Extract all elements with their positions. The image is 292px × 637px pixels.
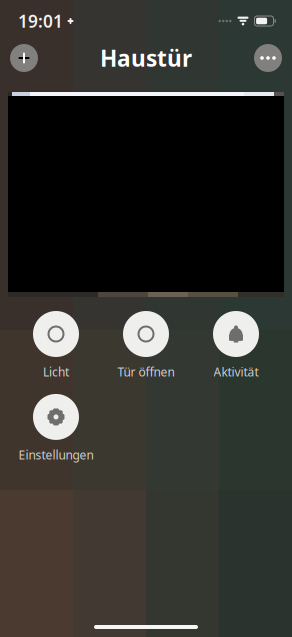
button[interactable]: Aktivität	[191, 311, 281, 380]
staticText: Einstellungen	[18, 447, 93, 463]
staticText: 19:01	[18, 9, 63, 32]
button[interactable]: More options	[253, 43, 283, 73]
button[interactable]: Close	[9, 43, 39, 73]
button[interactable]: Licht	[11, 311, 101, 380]
staticText: Licht	[43, 364, 69, 380]
button[interactable]: Tür öffnen	[101, 311, 191, 380]
staticText: Tür öffnen	[117, 364, 174, 380]
staticText: Haustür	[100, 43, 192, 73]
button[interactable]: Einstellungen	[11, 394, 101, 463]
staticText: Aktivität	[213, 364, 258, 380]
